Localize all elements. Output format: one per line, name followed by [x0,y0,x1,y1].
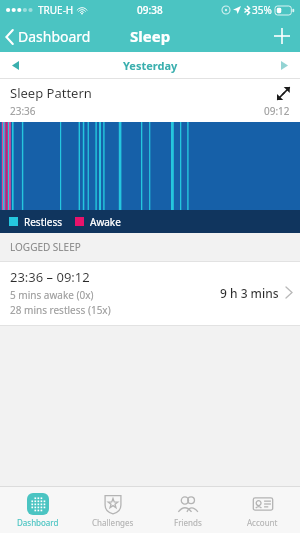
staticText: TRUE-H [38,3,74,17]
staticText: Friends [174,517,202,528]
staticText: Sleep Pattern [10,84,92,102]
button[interactable]: Friends [150,487,225,533]
staticText: Dashboard [18,27,91,46]
staticText: Yesterday [123,58,178,73]
button[interactable]: Challenges [75,487,150,533]
staticText: LOGGED SLEEP [10,240,81,254]
staticText: Awake [90,215,121,229]
button[interactable]: Dashboard [0,487,75,533]
button[interactable]: Dashboard [0,23,101,50]
staticText: 28 mins restless (15x) [10,303,111,317]
button[interactable]: Account [225,487,300,533]
button[interactable]: 23:36 – 09:12 [0,262,300,325]
staticText: Restless [24,215,63,229]
other: Expand [277,87,290,100]
staticText: Challenges [92,517,134,528]
staticText: Sleep [130,26,171,46]
staticText: 23:36 [10,104,36,118]
button[interactable]: Add [264,22,300,50]
staticText: 09:38 [137,3,163,17]
button[interactable]: Yesterday [115,58,186,73]
staticText: Account [247,517,278,528]
staticText: 09:12 [264,104,290,118]
staticText: 5 mins awake (0x) [10,288,94,302]
staticText: 35% [252,3,272,17]
staticText: 23:36 – 09:12 [10,268,90,286]
button[interactable]: Next day [269,55,300,76]
staticText: 9 h 3 mins [220,285,279,301]
button[interactable]: Sleep Pattern [0,82,300,104]
button[interactable]: Previous day [0,55,31,76]
staticText: Dashboard [17,517,59,528]
